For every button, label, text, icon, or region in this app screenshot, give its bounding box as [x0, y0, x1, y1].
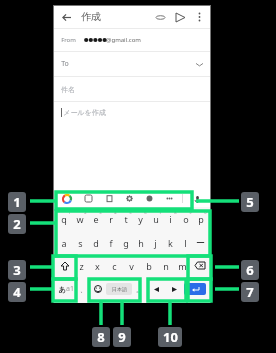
staticText: s — [78, 237, 83, 249]
button[interactable]: c — [106, 254, 123, 277]
button[interactable]: z — [73, 254, 89, 277]
staticText: q — [61, 213, 67, 225]
button[interactable]: e — [88, 207, 103, 231]
button[interactable]: v — [123, 254, 140, 277]
button[interactable]: Shift — [56, 254, 73, 277]
button[interactable]: Google — [60, 192, 74, 206]
button[interactable]: t — [118, 207, 133, 231]
button[interactable]: o — [178, 207, 193, 231]
staticText: p — [198, 213, 204, 225]
button[interactable]: Backspace — [191, 254, 208, 277]
button[interactable]: Voice input — [190, 192, 204, 206]
staticText: 2 — [13, 215, 21, 233]
button[interactable]: Back — [59, 10, 73, 24]
button[interactable]: i — [163, 207, 178, 231]
staticText: 9 — [189, 210, 192, 215]
staticText: 6 — [144, 210, 147, 215]
staticText: c — [112, 260, 117, 272]
button[interactable]: w — [72, 207, 88, 231]
button[interactable]: b — [140, 254, 157, 277]
button[interactable]: More — [163, 192, 176, 205]
button[interactable]: Sticker — [82, 192, 95, 205]
staticText: 7 — [159, 210, 162, 215]
staticText: あ — [58, 285, 66, 294]
staticText: n — [163, 260, 169, 272]
button[interactable]: y — [133, 207, 148, 231]
staticText: 日本語 — [112, 286, 127, 292]
button[interactable]: m — [174, 254, 191, 277]
staticText: e — [93, 213, 99, 225]
button[interactable]: More options — [193, 11, 205, 23]
staticText: t — [124, 213, 128, 225]
button[interactable]: r — [103, 207, 118, 231]
staticText: 10 — [163, 328, 178, 346]
staticText: 8 — [97, 328, 105, 346]
button[interactable]: 件名 — [61, 77, 203, 101]
button[interactable]: n — [157, 254, 174, 277]
staticText: w — [76, 213, 84, 225]
staticText: a — [61, 237, 67, 249]
button[interactable]: あ — [56, 277, 76, 301]
staticText: メールを作成 — [63, 108, 106, 117]
staticText: 7 — [246, 283, 254, 301]
button[interactable]: g — [118, 231, 133, 254]
button[interactable]: f — [103, 231, 118, 254]
staticText: m — [178, 260, 187, 272]
button[interactable]: 。 — [132, 277, 146, 301]
staticText: g — [123, 237, 129, 249]
staticText: 5 — [129, 210, 132, 215]
button[interactable]: x — [89, 254, 106, 277]
staticText: 1 — [13, 193, 21, 211]
staticText: 3 — [13, 261, 21, 279]
staticText: k — [168, 237, 173, 249]
button[interactable]: To — [61, 52, 203, 76]
button[interactable]: k — [163, 231, 178, 254]
staticText: u — [153, 213, 159, 225]
button[interactable]: 、 — [76, 277, 90, 301]
staticText: x — [95, 260, 100, 272]
staticText: l — [184, 237, 187, 249]
staticText: 5 — [246, 193, 254, 211]
staticText: r — [109, 213, 113, 225]
button[interactable]: d — [88, 231, 103, 254]
staticText: 作成 — [81, 10, 101, 23]
button[interactable]: Send — [173, 10, 187, 24]
button[interactable]: p — [193, 207, 208, 231]
staticText: 4 — [13, 283, 21, 301]
staticText: To — [61, 59, 69, 69]
staticText: 2 — [84, 210, 87, 215]
button[interactable]: l — [178, 231, 193, 254]
button[interactable]: Theme — [143, 192, 156, 205]
button[interactable]: Settings — [123, 192, 136, 205]
button[interactable]: u — [148, 207, 163, 231]
staticText: a1 — [66, 284, 74, 294]
button[interactable]: メールを作成 — [61, 108, 203, 117]
button[interactable]: q — [56, 207, 72, 231]
button[interactable]: h — [133, 231, 148, 254]
button[interactable]: Cursor right — [167, 282, 181, 296]
staticText: ー — [196, 237, 205, 248]
button[interactable]: Clipboard — [103, 192, 116, 205]
staticText: o — [183, 213, 189, 225]
staticText: 6 — [246, 261, 254, 279]
button[interactable]: ー — [193, 231, 208, 254]
button[interactable]: 日本語 — [106, 283, 132, 295]
button[interactable]: Emoji — [90, 277, 106, 301]
button[interactable]: Attach — [153, 10, 167, 24]
button[interactable]: j — [148, 231, 163, 254]
staticText: j — [154, 237, 157, 249]
button[interactable]: a — [56, 231, 72, 254]
staticText: v — [129, 260, 134, 272]
staticText: y — [138, 213, 143, 225]
staticText: 1 — [68, 210, 71, 215]
button[interactable]: s — [72, 231, 88, 254]
staticText: i — [169, 213, 172, 225]
staticText: 4 — [114, 210, 117, 215]
button[interactable]: Cursor left — [149, 282, 163, 296]
staticText: 0 — [204, 210, 207, 215]
staticText: From — [61, 36, 76, 44]
staticText: z — [79, 260, 84, 272]
button[interactable]: Enter — [184, 283, 206, 295]
staticText: 9 — [118, 328, 126, 346]
staticText: 件名 — [61, 85, 75, 94]
